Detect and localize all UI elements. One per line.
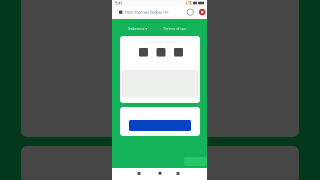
button[interactable]: Payment method 1 [139,48,148,56]
button[interactable]: Back [176,172,179,175]
button[interactable]: Profile [187,9,193,15]
staticText: 9:41 [115,0,122,6]
button[interactable]: Terms of use [162,26,196,31]
staticText: ▾ [145,26,147,31]
staticText: LTE [186,0,192,6]
button[interactable]: Menu [199,9,205,15]
button[interactable]: Address bar [114,6,205,17]
staticText: https://openapi.badpay.net [125,9,168,15]
staticText: Indonesia [128,26,144,31]
button[interactable]: Indonesia [128,26,162,31]
staticText: Select a payment method [143,41,177,44]
button[interactable]: Home [158,171,162,175]
button[interactable]: Continue [129,120,191,131]
staticText: Terms of use [163,26,186,31]
button[interactable]: Payment method 2 [156,48,165,56]
button[interactable]: Payment method 3 [174,48,183,56]
